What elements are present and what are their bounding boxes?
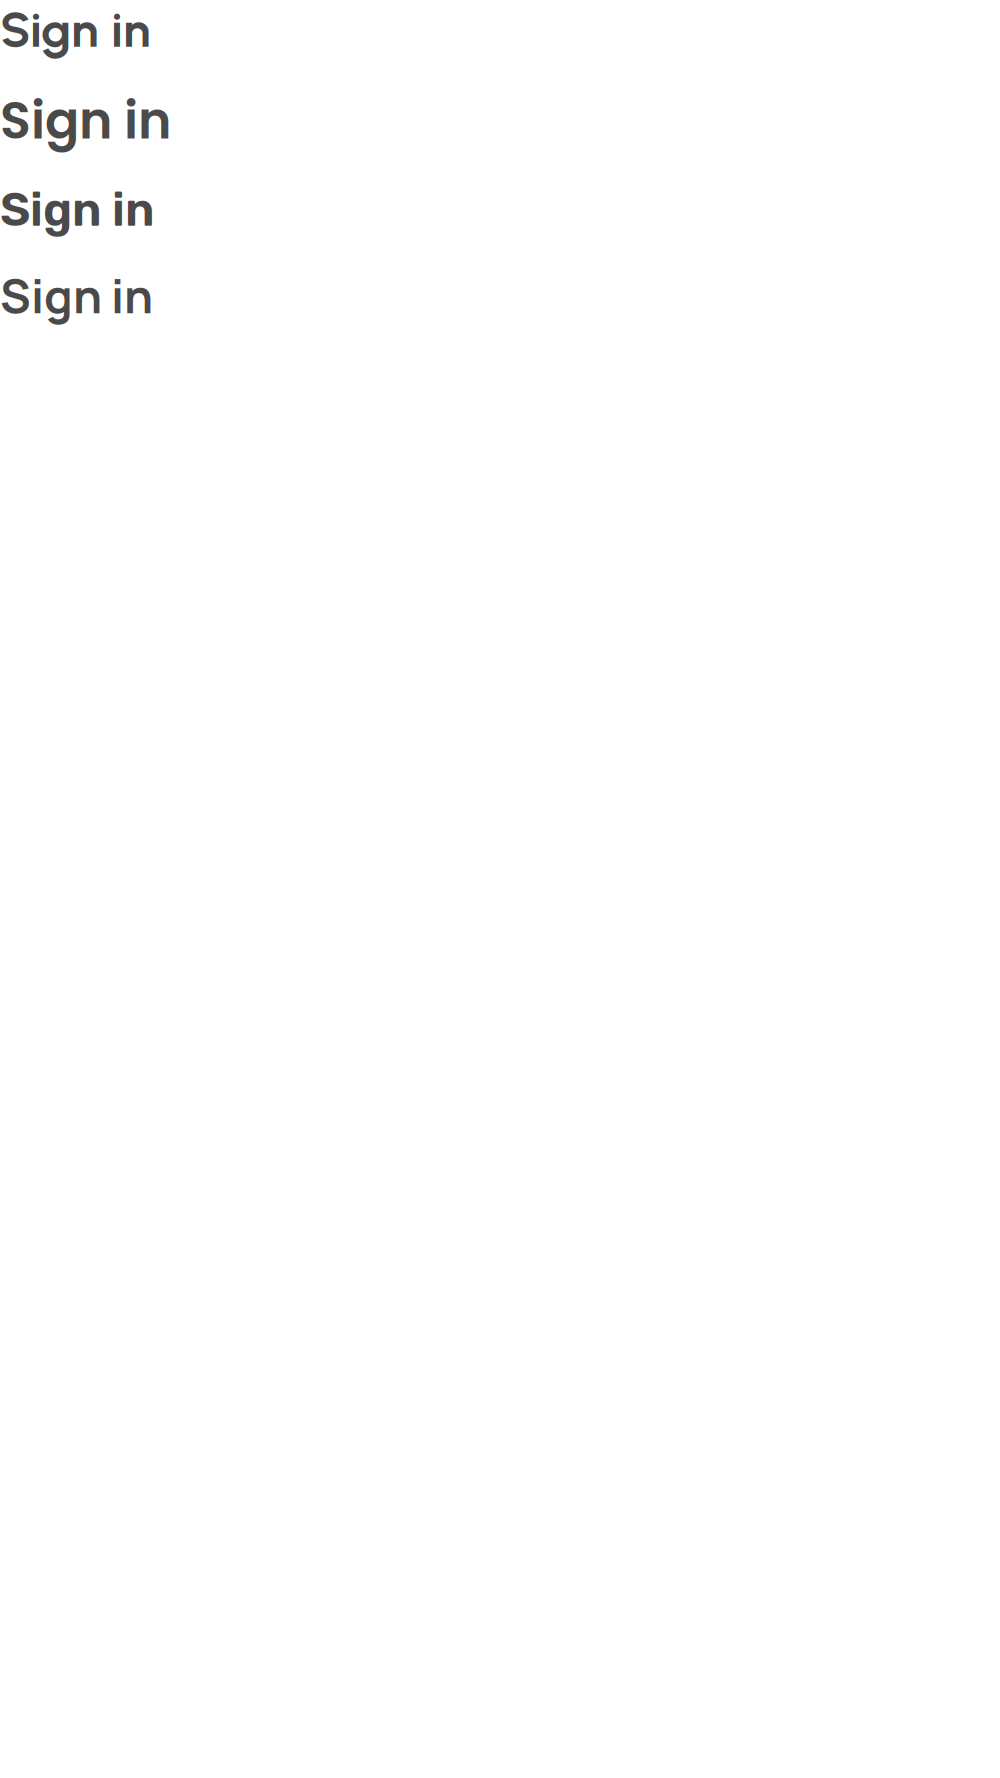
staticText: Sign in xyxy=(0,263,153,327)
staticText: Sign in xyxy=(0,0,151,59)
staticText: Sign in xyxy=(0,182,155,237)
staticText: Sign in xyxy=(0,85,171,156)
